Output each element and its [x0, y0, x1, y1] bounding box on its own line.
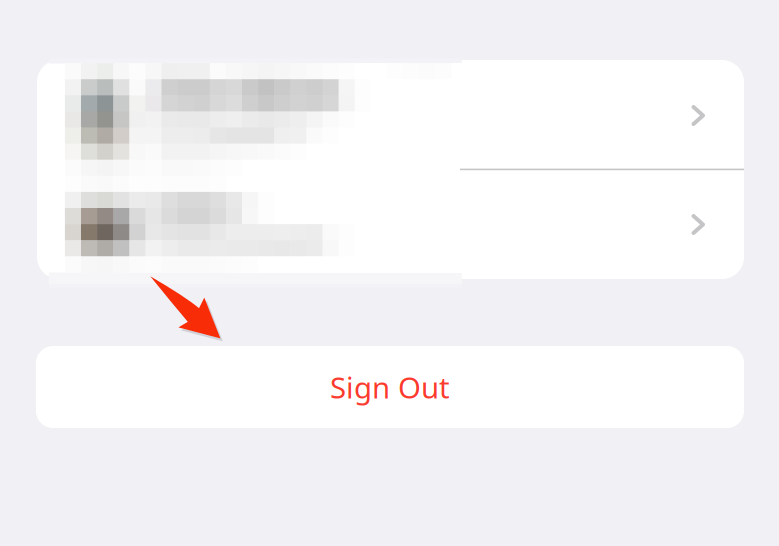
- staticText: Sign Out: [330, 367, 450, 406]
- button[interactable]: Sign Out: [36, 346, 744, 428]
